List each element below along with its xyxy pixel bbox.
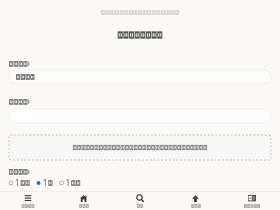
button[interactable]: card [224, 192, 280, 210]
button[interactable]: 1 [37, 178, 52, 188]
button[interactable]: upload [168, 192, 224, 210]
staticText: 1 [43, 178, 48, 188]
button[interactable]: home [56, 192, 112, 210]
staticText: 1 [65, 178, 70, 188]
button[interactable]: list [0, 192, 56, 210]
button[interactable]: 1 [9, 178, 30, 188]
button[interactable]: 1 [59, 178, 80, 188]
button[interactable]: search [112, 192, 168, 210]
staticText: 1 [15, 178, 20, 188]
